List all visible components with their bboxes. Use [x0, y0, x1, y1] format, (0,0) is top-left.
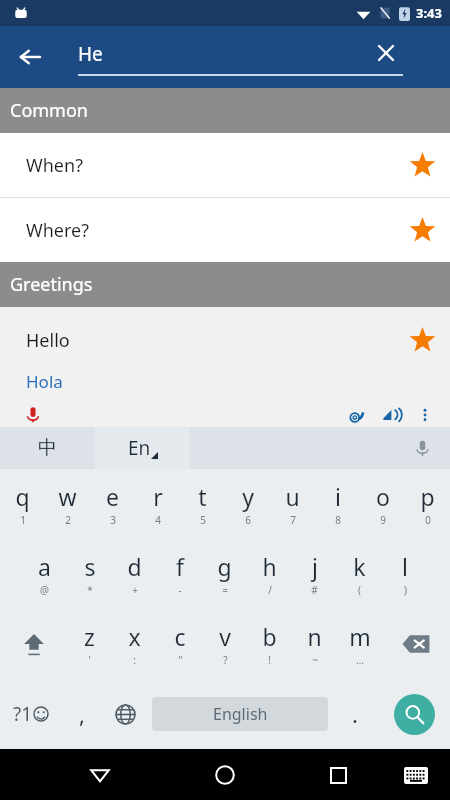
staticText: n	[307, 621, 322, 652]
staticText: d	[127, 551, 142, 582]
staticText: 3	[110, 513, 116, 527]
staticText: j	[312, 551, 318, 582]
button[interactable]: Hello	[0, 307, 450, 402]
button[interactable]: Recent apps	[316, 753, 360, 797]
staticText: q	[15, 481, 30, 512]
button[interactable]: Clear	[366, 33, 406, 73]
button[interactable]: Voice input	[22, 404, 44, 426]
staticText: k	[353, 551, 366, 582]
button[interactable]: r	[135, 469, 180, 539]
staticText: z	[84, 621, 95, 652]
staticText: f	[176, 551, 184, 582]
staticText: 4	[155, 513, 161, 527]
button[interactable]: Chinese input	[0, 427, 95, 469]
staticText: Where?	[26, 218, 90, 243]
button[interactable]: Back	[78, 753, 122, 797]
button[interactable]: ,	[61, 679, 102, 749]
button[interactable]: f	[157, 539, 202, 609]
staticText: 7	[290, 513, 296, 527]
staticText: :	[133, 653, 136, 667]
button[interactable]: c	[157, 609, 202, 679]
button[interactable]: Search	[378, 679, 450, 749]
button[interactable]: n	[292, 609, 337, 679]
button[interactable]: g	[202, 539, 247, 609]
button[interactable]: v	[202, 609, 247, 679]
button[interactable]: q	[0, 469, 45, 539]
staticText: ?	[223, 653, 228, 667]
button[interactable]: m	[337, 609, 382, 679]
staticText: a	[38, 551, 51, 582]
staticText: 3:43	[416, 4, 442, 22]
staticText: !	[268, 653, 271, 667]
button[interactable]: e	[90, 469, 135, 539]
button[interactable]: Shift	[0, 609, 67, 679]
staticText: w	[58, 481, 77, 512]
staticText: u	[285, 481, 300, 512]
staticText: t	[198, 481, 207, 512]
button[interactable]: Hide keyboard	[396, 755, 436, 795]
staticText: i	[335, 481, 341, 512]
staticText: c	[174, 621, 186, 652]
button[interactable]: i	[315, 469, 360, 539]
button[interactable]: Backspace	[382, 609, 450, 679]
button[interactable]: English	[152, 697, 328, 731]
staticText: e	[106, 481, 119, 512]
staticText: He	[78, 41, 103, 67]
staticText: "	[178, 653, 183, 667]
button[interactable]: Voice typing	[190, 427, 450, 469]
button[interactable]: d	[112, 539, 157, 609]
button[interactable]: t	[180, 469, 225, 539]
staticText: (	[358, 583, 361, 597]
button[interactable]: En	[95, 427, 190, 469]
button[interactable]: Voice typing	[410, 436, 434, 460]
button[interactable]: b	[247, 609, 292, 679]
button[interactable]: Slow mode	[346, 404, 368, 426]
staticText: 0	[425, 513, 431, 527]
staticText: =	[222, 583, 228, 597]
button[interactable]: h	[247, 539, 292, 609]
button[interactable]: When?	[0, 133, 450, 197]
button[interactable]: z	[67, 609, 112, 679]
button[interactable]: Change language	[102, 679, 148, 749]
button[interactable]: o	[360, 469, 405, 539]
button[interactable]: w	[45, 469, 90, 539]
staticText: m	[349, 621, 371, 652]
button[interactable]: a	[22, 539, 67, 609]
button[interactable]: Where?	[0, 198, 450, 262]
button[interactable]: x	[112, 609, 157, 679]
staticText: En	[128, 435, 151, 461]
staticText: ,	[79, 699, 85, 729]
staticText: 6	[245, 513, 251, 527]
staticText: ~	[312, 653, 318, 667]
button[interactable]: l	[382, 539, 427, 609]
staticText: y	[242, 481, 254, 512]
staticText: Common	[10, 98, 88, 123]
staticText: Greetings	[10, 272, 93, 297]
button[interactable]: k	[337, 539, 382, 609]
staticText: '	[88, 653, 91, 667]
staticText: 2	[65, 513, 71, 527]
staticText: ?1	[13, 701, 33, 727]
button[interactable]: j	[292, 539, 337, 609]
button[interactable]: Symbols and emoji	[0, 679, 61, 749]
button[interactable]: p	[405, 469, 450, 539]
button[interactable]: Back	[8, 35, 52, 79]
button[interactable]: More options	[414, 404, 436, 426]
button[interactable]: Speak	[380, 404, 402, 426]
staticText: )	[404, 583, 407, 597]
button[interactable]: Favorite	[402, 320, 442, 360]
button[interactable]: Favorite	[402, 210, 442, 250]
staticText: 9	[380, 513, 386, 527]
button[interactable]: s	[67, 539, 112, 609]
button[interactable]: Home	[203, 753, 247, 797]
staticText: g	[217, 551, 232, 582]
staticText: .	[352, 699, 358, 729]
button[interactable]: Favorite	[402, 145, 442, 185]
staticText: 中	[38, 436, 57, 460]
button[interactable]: u	[270, 469, 315, 539]
staticText: 8	[335, 513, 341, 527]
staticText: …	[356, 653, 364, 667]
button[interactable]: .	[332, 679, 378, 749]
button[interactable]: y	[225, 469, 270, 539]
staticText: When?	[26, 153, 83, 178]
